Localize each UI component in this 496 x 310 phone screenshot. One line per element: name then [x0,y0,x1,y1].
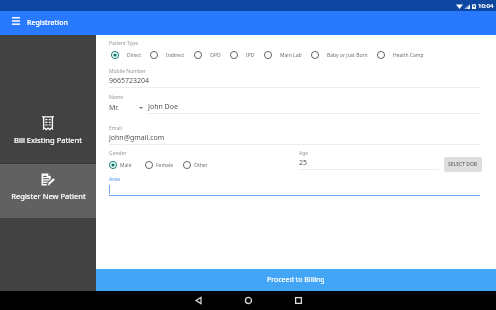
button[interactable]: IPD [230,51,255,59]
staticText: IPD [246,52,255,59]
button[interactable]: Proceed to Billing [96,269,496,291]
staticText: Other [194,162,208,169]
staticText: Direct [127,52,141,59]
staticText: Area [109,176,120,183]
button[interactable]: Health Camp [377,51,424,59]
staticText: John Doe [148,102,178,112]
staticText: Indirect [166,52,185,59]
staticText: Female [156,162,174,169]
staticText: SELECT DOB [448,161,478,168]
button[interactable]: Main Lab [264,51,302,59]
button[interactable]: Mr. [109,102,148,114]
button[interactable]: Baby or Just Born [311,51,368,59]
staticText: Proceed to Billing [267,275,325,285]
staticText: Baby or Just Born [327,52,368,59]
staticText: Register New Patient [11,191,86,201]
button[interactable]: Back [178,291,218,310]
staticText: OPD [210,52,221,59]
staticText: Male [120,162,132,169]
staticText: Name [109,94,124,101]
staticText: john@gmail.com [109,133,165,143]
button[interactable]: Register New Patient [0,164,96,218]
button[interactable]: Male [109,161,132,169]
staticText: Age [299,150,309,157]
button[interactable]: Female [145,161,174,169]
staticText: Main Lab [280,52,302,59]
button[interactable]: Home [228,291,268,310]
button[interactable]: Indirect [150,51,185,59]
staticText: Bill Existing Patient [14,135,82,145]
button[interactable]: Direct [111,51,141,59]
staticText: Patient Type [109,40,139,47]
staticText: 9665723204 [109,76,150,86]
button[interactable]: Recents [278,291,318,310]
button[interactable]: OPD [194,51,221,59]
staticText: Email [109,125,122,132]
staticText: Mr. [109,103,119,113]
staticText: Mobile Number [109,68,146,75]
button[interactable]: Menu [0,11,27,35]
button[interactable]: Bill Existing Patient [0,109,96,163]
staticText: 25 [299,158,308,168]
button[interactable]: SELECT DOB [444,157,482,172]
staticText: Health Camp [393,52,424,59]
button[interactable]: Other [183,161,208,169]
staticText: 10:04 [478,2,494,10]
staticText: Gender [109,150,127,157]
staticText: Registration [27,18,68,28]
